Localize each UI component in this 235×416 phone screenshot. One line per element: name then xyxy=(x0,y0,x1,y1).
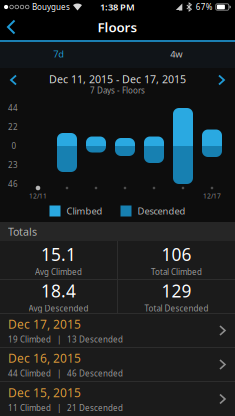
staticText: 7d xyxy=(53,48,64,60)
staticText: 23 xyxy=(8,160,18,170)
staticText: Dec 16, 2015 xyxy=(8,350,81,366)
button[interactable]: Dec 16, 2015 xyxy=(0,347,235,381)
staticText: 11 Climbed | 21 Descended xyxy=(8,403,123,413)
staticText: Floors xyxy=(97,18,137,36)
staticText: Bouygues xyxy=(32,2,70,12)
button[interactable]: 7d xyxy=(0,42,117,68)
staticText: 106 xyxy=(161,243,191,266)
staticText: Totals xyxy=(8,224,37,239)
staticText: 12/11 xyxy=(29,192,47,200)
button[interactable]: 4w xyxy=(117,42,235,68)
staticText: Avg Climbed xyxy=(35,267,82,277)
staticText: 12/17 xyxy=(203,192,221,200)
staticText: Dec 17, 2015 xyxy=(8,316,81,332)
staticText: 67% xyxy=(196,2,213,12)
staticText: Total Climbed xyxy=(151,267,202,277)
staticText: 7 Days - Floors xyxy=(90,85,145,96)
staticText: Climbed xyxy=(66,205,102,217)
staticText: Descended xyxy=(137,205,185,217)
staticText: Dec 11, 2015 - Dec 17, 2015 xyxy=(49,72,186,86)
staticText: 46 xyxy=(8,179,18,189)
staticText: 18.4 xyxy=(41,279,76,302)
button[interactable]: Dec 15, 2015 xyxy=(0,381,235,416)
staticText: 44 xyxy=(8,103,18,113)
staticText: 19 Climbed | 13 Descended xyxy=(8,334,123,345)
button[interactable]: Back xyxy=(0,14,24,40)
staticText: 129 xyxy=(161,279,191,302)
staticText: 1:38 PM xyxy=(100,1,135,13)
staticText: 15.1 xyxy=(41,243,76,266)
staticText: Total Descended xyxy=(144,303,208,314)
staticText: Dec 15, 2015 xyxy=(8,385,81,401)
staticText: 44 Climbed | 46 Descended xyxy=(8,368,123,379)
staticText: Avg Descended xyxy=(28,303,88,314)
staticText: 22 xyxy=(8,122,18,132)
staticText: 4w xyxy=(170,48,182,60)
button[interactable]: Previous week xyxy=(0,68,16,86)
button[interactable]: Dec 17, 2015 xyxy=(0,313,235,347)
staticText: 0 xyxy=(11,141,16,151)
button[interactable]: Next week xyxy=(219,68,235,86)
